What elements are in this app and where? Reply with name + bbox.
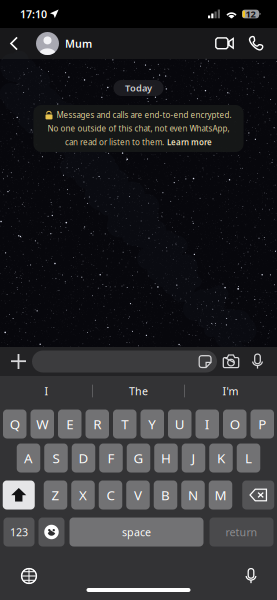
button[interactable]: I <box>195 409 219 438</box>
staticText: No one outside of this chat, not even Wh… <box>47 123 229 134</box>
button[interactable]: D <box>72 443 95 472</box>
staticText: space <box>122 525 151 539</box>
staticText: I'm <box>222 384 238 398</box>
staticText: P <box>258 415 266 433</box>
button[interactable]: Mum <box>36 32 92 55</box>
button[interactable]: U <box>168 409 191 438</box>
button[interactable]: M <box>209 480 232 509</box>
button[interactable]: A <box>17 443 40 472</box>
staticText: Z <box>51 486 59 504</box>
button[interactable]: Y <box>140 409 164 438</box>
button[interactable]: X <box>71 480 95 509</box>
staticText: The <box>129 384 148 398</box>
button[interactable]: J <box>182 443 205 472</box>
button[interactable]: V <box>126 480 150 509</box>
staticText: E <box>66 415 73 433</box>
button[interactable]: C <box>99 480 122 509</box>
button[interactable]: 123 <box>3 517 34 546</box>
button[interactable]: F <box>99 443 123 472</box>
button[interactable]: R <box>85 409 109 438</box>
button[interactable]: P <box>250 409 274 438</box>
button[interactable]: The <box>92 376 184 406</box>
staticText: L <box>245 449 252 467</box>
button[interactable]: K <box>209 443 233 472</box>
staticText: Learn more <box>167 137 212 147</box>
staticText: return <box>225 525 257 539</box>
button[interactable]: G <box>127 443 150 472</box>
staticText: U <box>175 415 185 433</box>
button[interactable]: Back <box>4 28 24 59</box>
staticText: Mum <box>65 36 92 51</box>
button[interactable]: Voice call <box>241 28 271 59</box>
button[interactable]: Voice message <box>245 347 270 376</box>
staticText: R <box>93 415 101 433</box>
button[interactable]: N <box>181 480 205 509</box>
button[interactable]: Z <box>44 480 67 509</box>
staticText: I <box>44 384 48 398</box>
button[interactable]: Q <box>3 409 26 438</box>
staticText: K <box>217 449 225 467</box>
button[interactable]: I <box>0 376 92 406</box>
button[interactable]: B <box>154 480 177 509</box>
staticText: F <box>107 449 114 467</box>
staticText: Today <box>125 82 152 94</box>
staticText: 17:10 <box>20 7 47 21</box>
staticText: can read or listen to them. <box>65 137 164 147</box>
staticText: Q <box>10 415 20 433</box>
staticText: J <box>191 449 195 467</box>
button[interactable]: Learn more <box>167 137 212 147</box>
button[interactable]: O <box>223 409 246 438</box>
button[interactable]: L <box>237 443 260 472</box>
staticText: X <box>79 486 87 504</box>
button[interactable]: Emoji <box>38 517 64 546</box>
button[interactable]: Stickers <box>193 350 217 372</box>
staticText: T <box>121 415 128 433</box>
staticText: N <box>188 486 198 504</box>
staticText: Messages and calls are end-to-end encryp… <box>56 110 231 120</box>
button[interactable]: Delete <box>242 480 274 509</box>
staticText: B <box>161 486 170 504</box>
button[interactable]: Camera <box>217 347 245 376</box>
staticText: V <box>134 486 142 504</box>
button[interactable]: Video call <box>207 28 241 59</box>
staticText: 12 <box>245 8 255 20</box>
button[interactable]: Change keyboard <box>9 559 49 593</box>
staticText: M <box>214 486 226 504</box>
staticText: Y <box>148 415 156 433</box>
staticText: S <box>52 449 59 467</box>
staticText: D <box>78 449 88 467</box>
button[interactable]: I'm <box>184 376 276 406</box>
button[interactable]: Dictate <box>231 559 271 593</box>
staticText: 123 <box>10 525 28 539</box>
staticText: W <box>36 415 48 433</box>
staticText: C <box>106 486 114 504</box>
button[interactable]: T <box>113 409 136 438</box>
button[interactable]: W <box>30 409 54 438</box>
button[interactable]: H <box>154 443 178 472</box>
staticText: I <box>205 415 210 433</box>
button[interactable]: return <box>209 517 273 546</box>
button[interactable]: S <box>44 443 68 472</box>
button[interactable]: Shift <box>3 480 35 509</box>
staticText: O <box>230 415 240 433</box>
button[interactable]: E <box>58 409 81 438</box>
button[interactable]: space <box>69 517 203 546</box>
staticText: G <box>133 449 143 467</box>
staticText: H <box>161 449 171 467</box>
staticText: A <box>24 449 33 467</box>
button[interactable]: Attach <box>5 347 32 376</box>
